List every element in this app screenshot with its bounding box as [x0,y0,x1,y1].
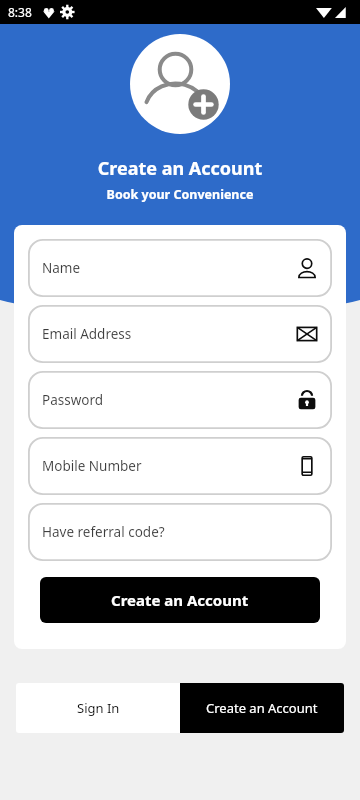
staticText: Mobile Number [42,457,142,475]
button[interactable]: Password [28,371,332,429]
button[interactable]: Create an Account [180,683,344,733]
other: Name [296,257,318,279]
button[interactable]: Name [28,239,332,297]
staticText: Create an Account [206,699,318,717]
staticText: Book your Convenience [0,186,360,203]
button[interactable]: Email Address [28,305,332,363]
staticText: Sign In [77,699,120,717]
staticText: Create an Account [111,590,249,610]
button[interactable]: Have referral code? [28,503,332,561]
button[interactable]: Sign In [16,683,180,733]
button[interactable]: Mobile Number [28,437,332,495]
other: Email [296,323,318,345]
staticText: Password [42,391,104,409]
staticText: Have referral code? [42,523,165,541]
other: Mobile Number [296,455,318,477]
staticText: Name [42,259,81,277]
staticText: 8:38 [8,4,32,20]
button[interactable]: Create an Account [40,577,320,623]
staticText: Create an Account [0,156,360,181]
other: Password [296,389,318,411]
staticText: Email Address [42,325,132,343]
